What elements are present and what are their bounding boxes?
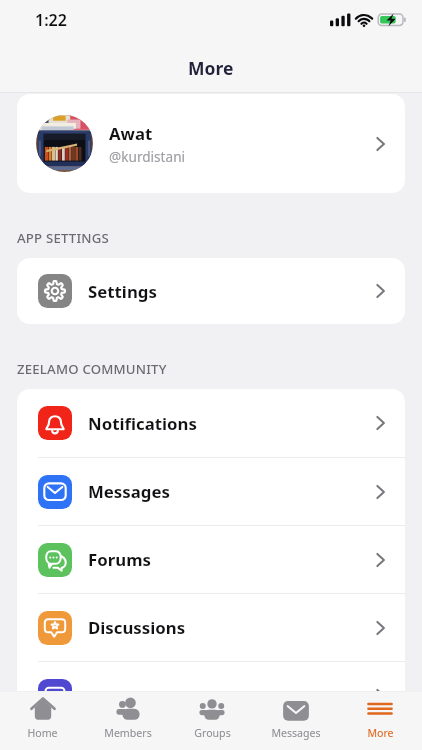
button[interactable]: Members [85, 692, 170, 740]
staticText: Messages [271, 726, 321, 740]
button[interactable]: Discussions [17, 594, 405, 661]
staticText: Blogs [88, 685, 376, 708]
staticText: Discussions [88, 616, 376, 639]
button[interactable]: Home [0, 692, 85, 740]
staticText: More [188, 56, 234, 80]
staticText: Groups [194, 726, 231, 740]
staticText: Forums [88, 548, 376, 571]
staticText: Settings [88, 280, 376, 303]
button[interactable]: Settings [17, 258, 405, 324]
button[interactable]: Blogs [17, 662, 405, 730]
button[interactable]: Groups [170, 692, 254, 740]
staticText: Messages [88, 480, 376, 503]
staticText: Notifications [88, 412, 376, 435]
staticText: More [367, 726, 394, 740]
staticText: Home [27, 726, 58, 740]
staticText: ZEELAMO COMMUNITY [17, 360, 167, 378]
button[interactable]: Awat [17, 94, 405, 193]
staticText: Awat [109, 122, 153, 145]
button[interactable]: Messages [17, 458, 405, 525]
staticText: 1:22 [35, 9, 67, 31]
staticText: Members [104, 726, 152, 740]
button[interactable]: Messages [254, 692, 338, 740]
staticText: APP SETTINGS [17, 229, 109, 247]
button[interactable]: Notifications [17, 389, 405, 457]
button[interactable]: Forums [17, 526, 405, 593]
button[interactable]: More [338, 692, 422, 740]
staticText: @kurdistani [109, 147, 186, 166]
